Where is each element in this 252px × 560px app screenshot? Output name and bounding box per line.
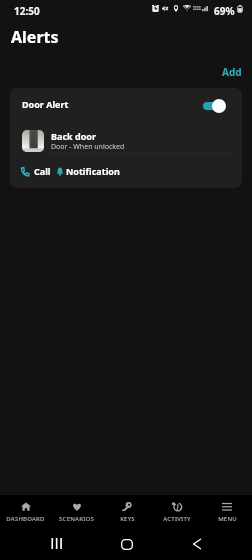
- staticText: KEYS: [120, 515, 135, 523]
- staticText: 12:50: [14, 4, 40, 18]
- button[interactable]: Call: [19, 161, 53, 181]
- button[interactable]: DASHBOARD: [0, 497, 51, 533]
- staticText: SCENARIOS: [59, 515, 94, 523]
- staticText: Notification: [66, 165, 120, 177]
- staticText: 69%: [214, 4, 235, 18]
- button[interactable]: SCENARIOS: [51, 497, 102, 533]
- staticText: MENU: [218, 515, 237, 523]
- button[interactable]: ACTIVITY: [152, 497, 202, 533]
- other: Back: [193, 539, 201, 549]
- staticText: Back door: [51, 130, 96, 142]
- staticText: Call: [34, 165, 51, 177]
- staticText: Door Alert: [22, 98, 69, 110]
- button[interactable]: Add: [212, 60, 252, 84]
- button[interactable]: [203, 99, 225, 113]
- button[interactable]: MENU: [202, 497, 252, 533]
- button[interactable]: Back door: [10, 125, 242, 157]
- staticText: Alerts: [11, 26, 59, 48]
- other: Recents: [51, 538, 62, 549]
- staticText: DASHBOARD: [6, 515, 45, 523]
- staticText: Add: [222, 65, 242, 79]
- staticText: Door - When unlocked: [51, 142, 125, 152]
- button[interactable]: Notification: [54, 161, 122, 181]
- button[interactable]: KEYS: [102, 497, 152, 533]
- other: Home: [121, 539, 133, 550]
- staticText: ACTIVITY: [163, 515, 191, 523]
